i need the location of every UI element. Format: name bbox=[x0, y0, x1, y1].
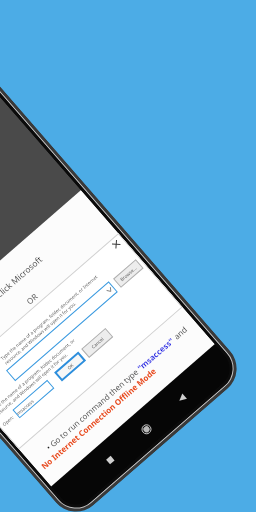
staticText: Cancel bbox=[90, 335, 105, 350]
button[interactable]: Recents bbox=[95, 445, 126, 476]
staticText: resource, and Windows will open it for y… bbox=[3, 300, 77, 366]
staticText: Microsoft Office and click Microsoft bbox=[0, 253, 45, 355]
staticText: "msaccess" bbox=[135, 334, 177, 373]
staticText: Type the name of a program, folder, docu… bbox=[0, 337, 76, 412]
staticText: Type the name of a program, folder, docu… bbox=[0, 273, 99, 361]
button[interactable]: Close bbox=[109, 238, 122, 251]
staticText: Open: bbox=[1, 413, 15, 427]
button[interactable]: Back bbox=[166, 383, 197, 414]
staticText: and bbox=[169, 323, 189, 343]
button[interactable]: Browse... bbox=[113, 259, 144, 288]
staticText: resource, and Windows will open it for y… bbox=[0, 351, 69, 417]
staticText: OR bbox=[24, 290, 40, 306]
button[interactable]: OK bbox=[54, 351, 86, 382]
staticText: No Internet Connection Offline Mode bbox=[38, 365, 158, 471]
button[interactable]: Home bbox=[130, 414, 161, 445]
staticText: • Go to run command then type bbox=[43, 365, 142, 452]
staticText: OK bbox=[66, 362, 75, 371]
staticText: Browse... bbox=[119, 265, 138, 282]
staticText: msaccess bbox=[14, 398, 35, 417]
button[interactable]: Cancel bbox=[81, 328, 113, 358]
